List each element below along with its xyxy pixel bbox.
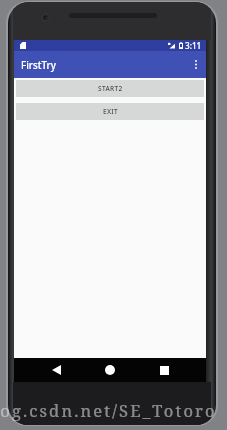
button[interactable]: Recent apps — [146, 358, 182, 382]
button[interactable]: Home — [92, 358, 128, 382]
button[interactable]: More options — [186, 51, 206, 78]
staticText: EXIT — [103, 107, 118, 116]
button[interactable]: START2 — [16, 80, 204, 97]
staticText: 3:11 — [185, 40, 202, 51]
staticText: log.csdn.net/SE_Totoro — [0, 399, 217, 421]
staticText: START2 — [98, 84, 123, 93]
button[interactable]: Back — [38, 358, 74, 382]
button[interactable]: EXIT — [16, 103, 204, 120]
staticText: FirstTry — [21, 59, 56, 72]
